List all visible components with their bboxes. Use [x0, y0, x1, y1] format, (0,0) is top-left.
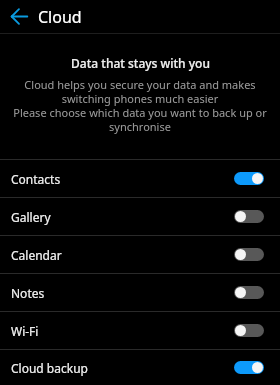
button[interactable]: Notes — [0, 274, 280, 311]
staticText: Contacts — [11, 171, 61, 187]
button[interactable]: Gallery — [0, 198, 280, 235]
staticText: Cloud backup — [11, 360, 88, 376]
staticText: Data that stays with you — [71, 55, 210, 71]
button[interactable]: Wi-Fi — [0, 312, 280, 349]
staticText: Calendar — [11, 247, 62, 263]
staticText: Cloud — [38, 6, 82, 28]
staticText: Gallery — [11, 209, 51, 225]
button[interactable]: Back — [0, 0, 38, 33]
button[interactable]: Cloud backup — [0, 350, 280, 385]
staticText: Wi-Fi — [11, 323, 39, 339]
staticText: Cloud helps you secure your data and mak… — [12, 77, 268, 134]
button[interactable]: Calendar — [0, 236, 280, 273]
button[interactable]: Contacts — [0, 160, 280, 197]
staticText: Notes — [11, 285, 45, 301]
